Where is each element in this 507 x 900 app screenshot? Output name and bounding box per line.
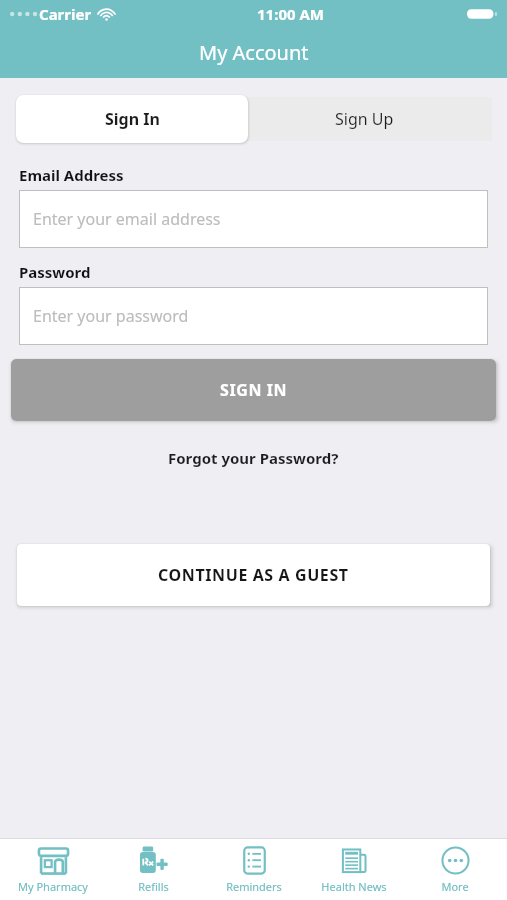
staticText: Sign In [105, 108, 160, 130]
staticText: More [441, 879, 469, 894]
other: My Pharmacy [38, 846, 69, 875]
staticText: Sign Up [335, 108, 394, 130]
button[interactable]: SIGN IN [11, 359, 496, 421]
staticText: 11:00 AM [257, 4, 324, 24]
other: More [441, 846, 470, 875]
button[interactable]: CONTINUE AS A GUEST [17, 544, 490, 606]
button[interactable]: Sign In [16, 95, 248, 143]
staticText: Refills [138, 879, 169, 894]
button[interactable]: Forgot your Password? [160, 444, 347, 472]
staticText: SIGN IN [220, 379, 288, 401]
staticText: Reminders [226, 879, 282, 894]
other: Refills [137, 846, 170, 875]
staticText: CONTINUE AS A GUEST [158, 564, 349, 586]
button[interactable]: Enter your email address [19, 190, 488, 248]
staticText: Health News [321, 879, 387, 894]
other: Health News [340, 846, 369, 875]
other: Reminders [241, 846, 268, 875]
staticText: My Pharmacy [18, 879, 88, 894]
staticText: Enter your email address [33, 208, 221, 230]
button[interactable]: Health News [306, 846, 402, 894]
button[interactable]: Sign Up [248, 95, 480, 143]
staticText: Email Address [19, 165, 124, 185]
button[interactable]: My Pharmacy [5, 846, 101, 894]
button[interactable]: Enter your password [19, 287, 488, 345]
button[interactable]: Reminders [206, 846, 302, 894]
staticText: My Account [199, 39, 309, 66]
staticText: Forgot your Password? [168, 448, 339, 468]
button[interactable]: Refills [105, 846, 201, 894]
button[interactable]: More [407, 846, 503, 894]
staticText: Enter your password [33, 305, 189, 327]
staticText: Password [19, 262, 91, 282]
staticText: Carrier [39, 4, 92, 24]
